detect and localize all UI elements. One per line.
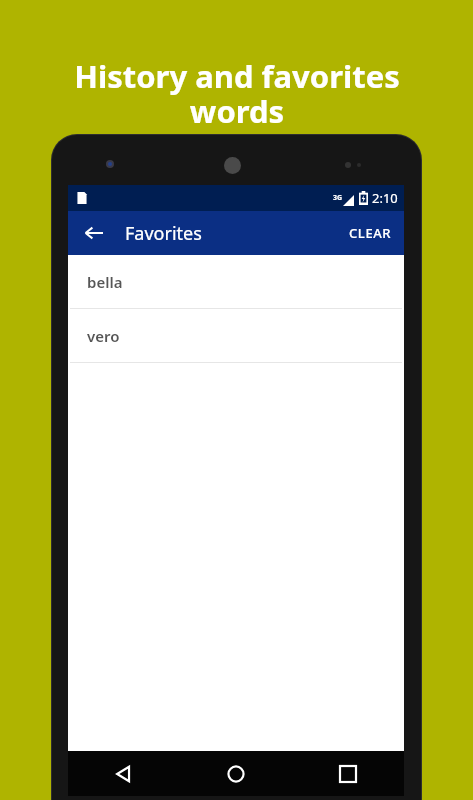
button[interactable]: Back	[68, 751, 180, 796]
button[interactable]: CLEAR	[337, 211, 404, 255]
staticText: CLEAR	[349, 224, 392, 242]
staticText: 2:10	[372, 189, 398, 207]
button[interactable]: bella	[68, 255, 404, 309]
button[interactable]: Back	[76, 215, 112, 251]
staticText: History and favorites words	[74, 55, 400, 133]
button[interactable]: Home	[180, 751, 292, 796]
staticText: Favorites	[125, 221, 202, 246]
staticText: bella	[87, 272, 123, 292]
button[interactable]: vero	[68, 309, 404, 363]
button[interactable]: Recents	[292, 751, 404, 796]
staticText: vero	[87, 326, 120, 346]
staticText: 3G	[333, 193, 343, 203]
